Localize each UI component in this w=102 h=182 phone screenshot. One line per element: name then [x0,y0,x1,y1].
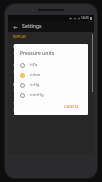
button[interactable]: Pressure units [8,43,94,56]
staticText: Refresh interval [13,82,44,88]
staticText: Settings [22,23,42,30]
staticText: Pressure units [20,50,55,57]
staticText: DISPLAY [13,35,27,39]
button[interactable]: Temperature units [8,62,94,75]
button[interactable]: Theme [8,100,94,113]
staticText: 14:25 [81,16,89,20]
staticText: Pressure units [13,44,42,50]
staticText: mbar [30,72,41,78]
staticText: mmHg [30,92,44,98]
button[interactable]: Refresh interval [8,81,94,94]
staticText: mbar [13,51,22,55]
staticText: CANCEL [64,104,80,109]
button[interactable]: hPa [20,62,83,68]
button[interactable]: CANCEL [61,103,83,110]
staticText: Dark [13,108,21,112]
staticText: hPa [30,62,38,68]
staticText: Temperature units [13,63,50,69]
staticText: Theme [13,101,27,107]
button[interactable]: mbar [20,72,83,78]
button[interactable]: inHg [20,82,83,88]
staticText: inHg [30,82,40,88]
button[interactable]: mmHg [20,92,83,98]
staticText: 15 minutes [13,89,30,93]
staticText: Celsius [13,70,24,74]
button[interactable]: Back [11,23,19,31]
